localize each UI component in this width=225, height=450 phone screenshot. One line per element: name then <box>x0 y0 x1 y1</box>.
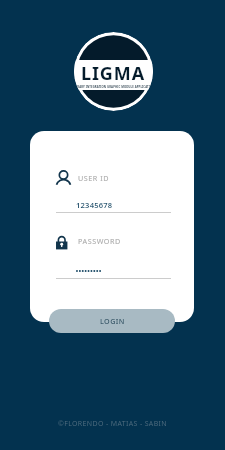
staticText: USER ID <box>78 173 110 183</box>
staticText: PASSWORD <box>78 236 121 246</box>
staticText: LIBRARY INTEGRATION GRAPHIC MODULE APPLI… <box>74 85 153 89</box>
button[interactable]: LOGIN <box>49 309 175 333</box>
button[interactable]: PASSWORD <box>55 231 175 251</box>
button[interactable]: USER ID <box>55 168 175 188</box>
other: LIGMA logo <box>74 32 153 111</box>
staticText: 12345678 <box>76 200 113 210</box>
staticText: ©FLORENDO - MATIAS - SABIN <box>58 419 167 429</box>
staticText: LIGMA <box>81 61 146 86</box>
staticText: LOGIN <box>100 316 125 326</box>
